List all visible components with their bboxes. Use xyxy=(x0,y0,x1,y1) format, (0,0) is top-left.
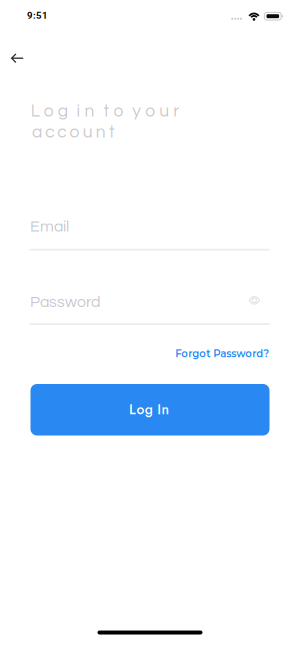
button[interactable]: Password xyxy=(0,0,240,36)
staticText: Forgot Password? xyxy=(175,347,269,360)
staticText: o xyxy=(145,102,155,120)
staticText: a xyxy=(32,123,42,141)
staticText: Password xyxy=(30,294,100,310)
staticText: 9:51 xyxy=(27,10,48,21)
staticText: r xyxy=(173,102,179,120)
staticText: L xyxy=(31,102,40,120)
button[interactable] xyxy=(249,296,260,305)
staticText: y xyxy=(132,102,141,120)
staticText: u xyxy=(83,123,93,141)
staticText: t xyxy=(103,102,109,120)
staticText: o xyxy=(113,102,123,120)
staticText: n xyxy=(96,123,106,141)
staticText: g xyxy=(58,102,68,120)
staticText: Log In xyxy=(129,399,170,419)
staticText: Email xyxy=(30,218,69,235)
button[interactable]: Log In xyxy=(0,0,239,51)
staticText: c xyxy=(57,123,66,141)
button[interactable] xyxy=(0,0,36,36)
staticText: o xyxy=(69,123,79,141)
staticText: n xyxy=(84,102,94,120)
button[interactable]: Email xyxy=(0,0,240,36)
staticText: c xyxy=(45,123,54,141)
button[interactable]: Forgot Password? xyxy=(0,0,130,12)
staticText: t xyxy=(109,123,115,141)
staticText: u xyxy=(159,102,169,120)
staticText: o xyxy=(44,102,54,120)
staticText: i xyxy=(77,102,81,120)
